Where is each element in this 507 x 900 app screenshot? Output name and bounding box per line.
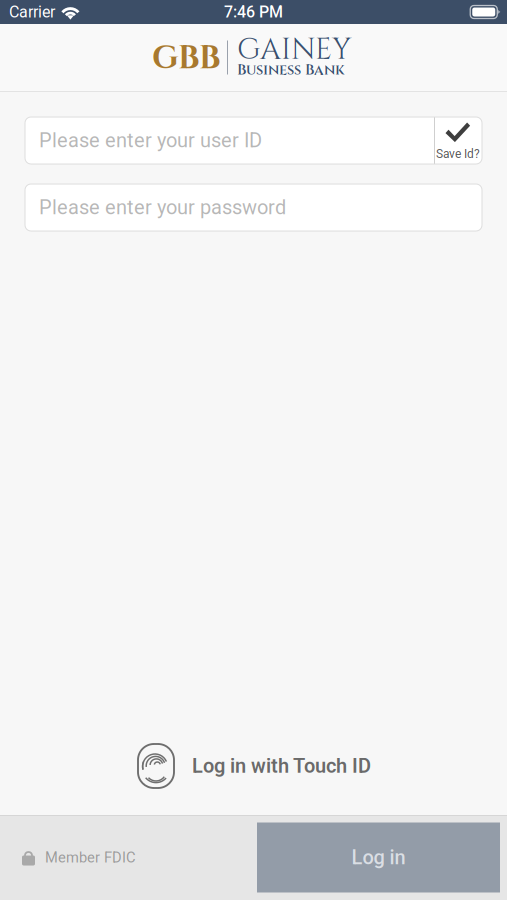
- staticText: Log in: [351, 846, 405, 869]
- button[interactable]: Save Id?: [434, 117, 482, 164]
- button[interactable]: Member FDIC: [0, 815, 257, 900]
- staticText: Member FDIC: [45, 849, 136, 866]
- staticText: GBB: [152, 37, 221, 80]
- staticText: 7:46 PM: [224, 3, 283, 21]
- staticText: Please enter your user ID: [39, 129, 262, 152]
- staticText: Save Id?: [436, 147, 480, 161]
- button[interactable]: Log in: [257, 822, 500, 892]
- staticText: Carrier: [9, 3, 55, 21]
- staticText: Business Bank: [237, 60, 345, 80]
- button[interactable]: Log in with Touch ID: [133, 742, 374, 790]
- staticText: GAINEY: [237, 30, 351, 70]
- staticText: Please enter your password: [39, 196, 286, 219]
- staticText: Log in with Touch ID: [192, 754, 371, 778]
